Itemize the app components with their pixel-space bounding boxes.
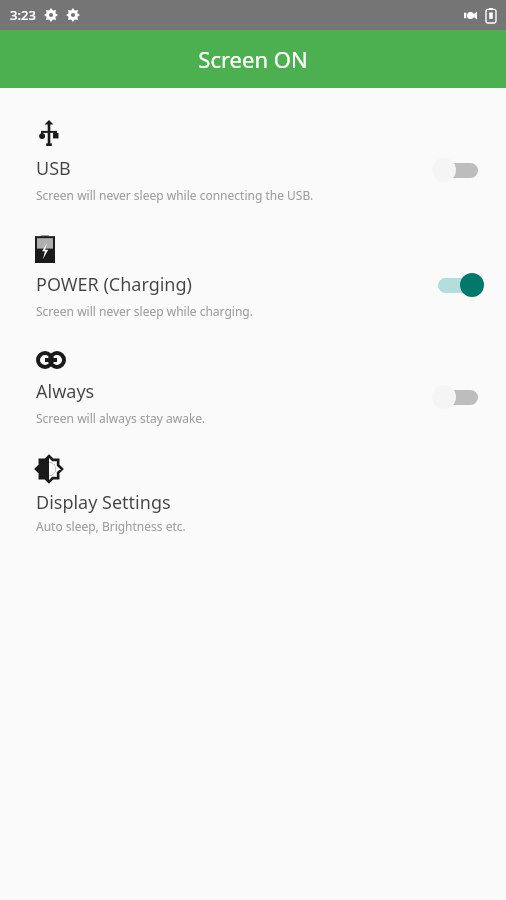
staticText: Auto sleep, Brightness etc. (36, 518, 186, 534)
button[interactable]: USB (0, 120, 506, 203)
staticText: USB (36, 156, 71, 181)
staticText: 3:23 (10, 6, 36, 24)
staticText: POWER (Charging) (36, 272, 192, 297)
button[interactable]: Always (0, 351, 506, 426)
staticText: Display Settings (36, 490, 171, 515)
button[interactable]: Display Settings (0, 456, 506, 534)
button[interactable]: Off (432, 382, 484, 412)
staticText: Always (36, 379, 95, 404)
staticText: Screen will never sleep while connecting… (36, 187, 314, 203)
button[interactable]: Off (432, 155, 484, 185)
button[interactable]: On (432, 270, 484, 300)
button[interactable]: POWER (Charging) (0, 235, 506, 319)
staticText: Screen will always stay awake. (36, 410, 206, 426)
staticText: Screen ON (198, 44, 308, 74)
staticText: Screen will never sleep while charging. (36, 303, 253, 319)
